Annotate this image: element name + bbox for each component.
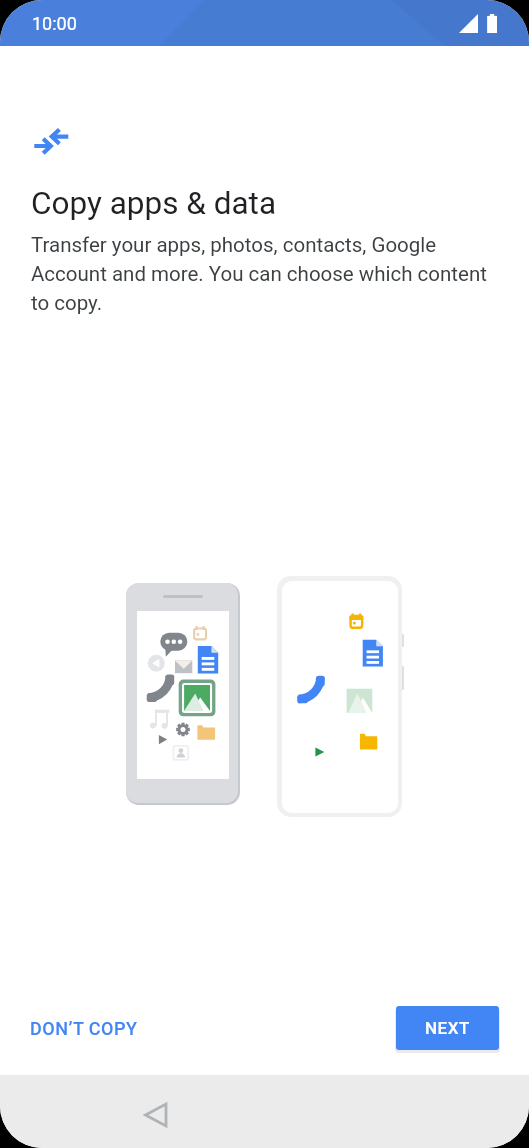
staticText: Transfer your apps, photos, contacts, Go… [31, 233, 503, 315]
staticText: NEXT [425, 1018, 470, 1038]
staticText: 10:00 [32, 13, 77, 34]
button[interactable]: Back [132, 1091, 180, 1139]
button[interactable]: DON’T COPY [14, 1008, 154, 1049]
button[interactable]: NEXT [396, 1006, 499, 1050]
staticText: Copy apps & data [31, 185, 277, 222]
staticText: DON’T COPY [30, 1018, 138, 1039]
